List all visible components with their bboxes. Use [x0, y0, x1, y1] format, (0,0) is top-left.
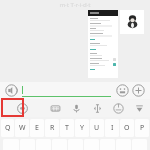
button[interactable]: I	[105, 119, 119, 137]
button[interactable]: Emoji	[116, 84, 129, 97]
button[interactable]: R	[45, 119, 59, 137]
button[interactable]	[88, 10, 118, 78]
staticText: Q	[5, 123, 11, 133]
staticText: P	[140, 123, 145, 133]
staticText: Y	[80, 123, 84, 133]
staticText: I	[111, 123, 114, 133]
button[interactable]: W	[15, 119, 29, 137]
button[interactable]: O	[120, 119, 134, 137]
staticText: m·t T·r·i·d·t	[59, 1, 91, 9]
button[interactable]	[22, 84, 111, 97]
button[interactable]: Text editing	[87, 99, 108, 117]
button[interactable]: Q	[1, 119, 14, 137]
button[interactable]: Keyboard	[45, 99, 66, 117]
button[interactable]: Hide keyboard	[129, 99, 150, 117]
button[interactable]: Profile photo	[120, 10, 144, 34]
button[interactable]: Add attachment	[132, 84, 145, 97]
button[interactable]: P	[135, 119, 149, 137]
button[interactable]: Stickers	[0, 99, 45, 117]
button[interactable]: Voice input	[5, 84, 18, 97]
button[interactable]: U	[90, 119, 104, 137]
staticText: O	[124, 123, 130, 133]
staticText: U	[94, 123, 100, 133]
staticText: E	[35, 123, 39, 133]
staticText: T	[65, 123, 69, 133]
button[interactable]: E	[30, 119, 44, 137]
button[interactable]: Language	[108, 99, 129, 117]
button[interactable]: Y	[75, 119, 89, 137]
button[interactable]: Voice typing	[66, 99, 87, 117]
button[interactable]: T	[60, 119, 74, 137]
staticText: W	[19, 123, 26, 133]
staticText: R	[50, 123, 55, 133]
